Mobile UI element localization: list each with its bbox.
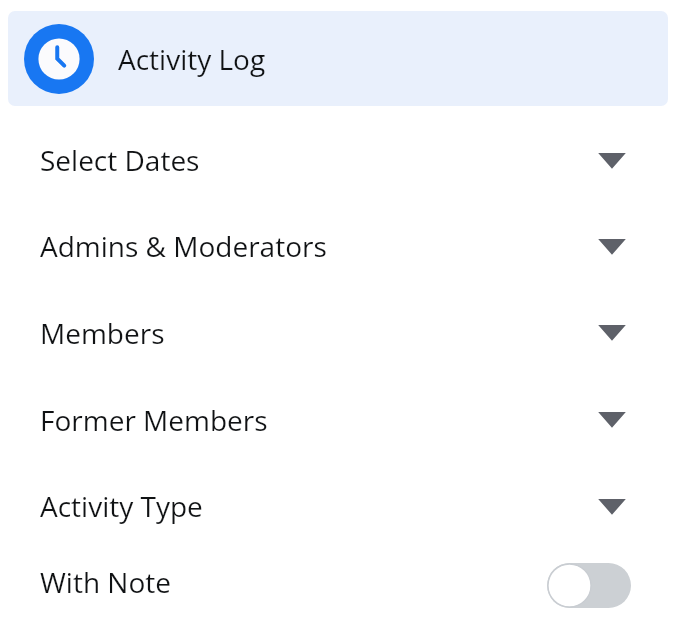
button[interactable]: Activity Type	[0, 463, 680, 549]
staticText: Activity Log	[118, 40, 266, 78]
button[interactable]: Members	[0, 289, 680, 376]
button[interactable]: Admins & Moderators	[0, 203, 680, 289]
button[interactable]: Activity Log	[8, 11, 668, 106]
staticText: With Note	[40, 563, 171, 601]
staticText: Admins & Moderators	[40, 227, 327, 265]
button[interactable]: Select Dates	[0, 117, 680, 203]
staticText: Members	[40, 314, 165, 352]
staticText: Former Members	[40, 401, 268, 439]
staticText: Select Dates	[40, 141, 200, 179]
button[interactable]: Former Members	[0, 376, 680, 463]
button[interactable]: With Note toggle	[547, 563, 631, 608]
staticText: Activity Type	[40, 487, 203, 525]
button[interactable]: With Note	[0, 549, 680, 615]
